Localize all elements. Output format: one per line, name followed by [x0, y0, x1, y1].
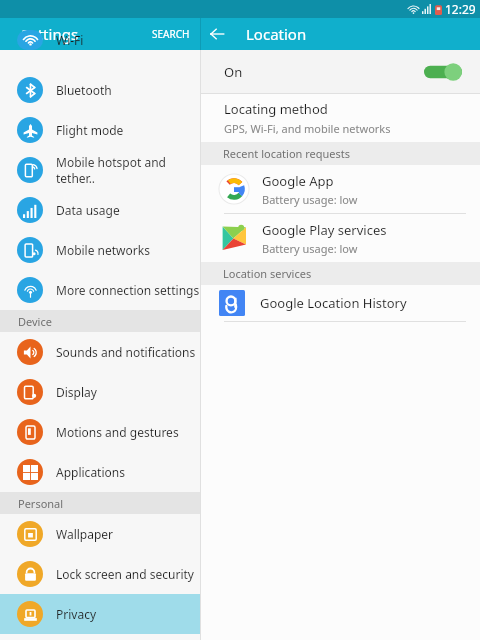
- staticText: Wi-Fi: [56, 32, 84, 48]
- button[interactable]: Google App: [201, 165, 480, 213]
- staticText: Battery usage: low: [262, 241, 358, 256]
- button[interactable]: Bluetooth: [0, 70, 200, 110]
- button[interactable]: Locating method: [201, 94, 480, 142]
- button[interactable]: Mobile hotspot and tether..: [0, 150, 200, 190]
- staticText: Google Location History: [260, 294, 407, 312]
- staticText: Bluetooth: [56, 82, 112, 98]
- staticText: Applications: [56, 464, 125, 480]
- staticText: GPS, Wi-Fi, and mobile networks: [224, 121, 391, 136]
- staticText: Mobile networks: [56, 242, 150, 258]
- staticText: Locating method: [224, 100, 328, 118]
- button[interactable]: Google Location History: [201, 285, 480, 321]
- button[interactable]: Sounds and notifications: [0, 332, 200, 372]
- button[interactable]: Display: [0, 372, 200, 412]
- staticText: Personal: [18, 496, 64, 511]
- button[interactable]: Mobile networks: [0, 230, 200, 270]
- staticText: Recent location requests: [223, 146, 351, 161]
- button[interactable]: SEARCH: [142, 18, 200, 50]
- staticText: Privacy: [56, 606, 97, 622]
- staticText: Google App: [262, 172, 334, 190]
- staticText: Lock screen and security: [56, 566, 194, 582]
- staticText: Flight mode: [56, 122, 124, 138]
- staticText: SEARCH: [152, 27, 190, 41]
- staticText: Display: [56, 384, 97, 400]
- button[interactable]: Privacy: [0, 594, 200, 634]
- staticText: Settings: [21, 24, 79, 44]
- staticText: Data usage: [56, 202, 120, 218]
- button[interactable]: Data usage: [0, 190, 200, 230]
- button[interactable]: Flight mode: [0, 110, 200, 150]
- staticText: More connection settings: [56, 282, 200, 298]
- button[interactable]: Motions and gestures: [0, 412, 200, 452]
- button[interactable]: Applications: [0, 452, 200, 492]
- button[interactable]: On: [201, 50, 480, 93]
- staticText: Device: [18, 314, 52, 329]
- staticText: 12:29: [445, 1, 476, 17]
- staticText: On: [224, 63, 243, 81]
- button[interactable]: Google Play services: [201, 214, 480, 262]
- staticText: Sounds and notifications: [56, 344, 196, 360]
- button[interactable]: Settings: [0, 18, 142, 50]
- button[interactable]: Back: [201, 18, 233, 50]
- staticText: Wallpaper: [56, 526, 114, 542]
- staticText: Mobile hotspot and tether..: [56, 154, 200, 186]
- staticText: Location services: [223, 266, 312, 281]
- staticText: Motions and gestures: [56, 424, 179, 440]
- staticText: Google Play services: [262, 221, 387, 239]
- button[interactable]: Lock screen and security: [0, 554, 200, 594]
- staticText: Battery usage: low: [262, 192, 358, 207]
- button[interactable]: Wallpaper: [0, 514, 200, 554]
- staticText: Location: [246, 24, 307, 44]
- button[interactable]: More connection settings: [0, 270, 200, 310]
